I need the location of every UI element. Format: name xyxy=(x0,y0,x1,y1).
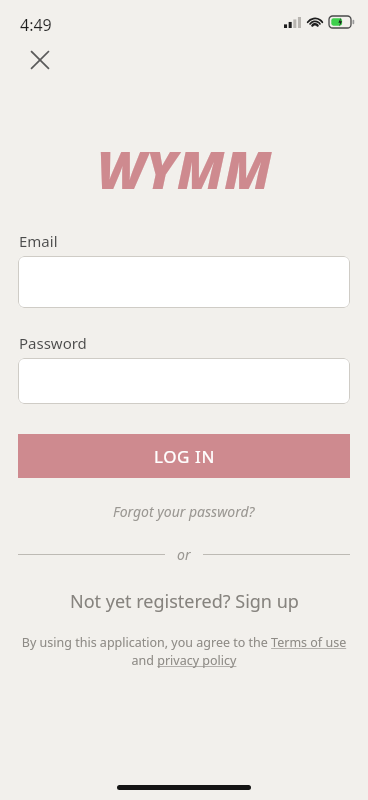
button[interactable]: Forgot your password? xyxy=(113,502,255,521)
staticText: By using this application, you agree to … xyxy=(16,634,352,669)
staticText: LOG IN xyxy=(154,445,215,468)
button[interactable] xyxy=(18,358,350,404)
staticText: or xyxy=(177,545,191,564)
button[interactable]: LOG IN xyxy=(18,434,350,478)
staticText: WYMM xyxy=(97,133,272,204)
staticText: Email xyxy=(19,231,58,251)
staticText: Forgot your password? xyxy=(113,502,255,521)
button[interactable] xyxy=(18,256,350,308)
button[interactable]: Not yet registered? Sign up xyxy=(70,589,299,614)
staticText: Not yet registered? Sign up xyxy=(70,589,299,614)
button[interactable]: Close xyxy=(18,38,62,82)
staticText: 4:49 xyxy=(20,14,52,36)
staticText: Password xyxy=(19,333,87,353)
